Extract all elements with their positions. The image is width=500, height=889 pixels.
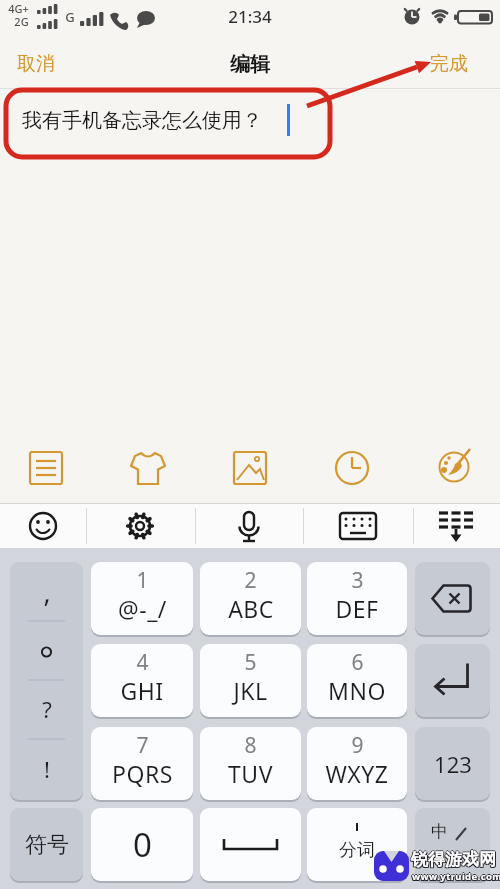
button[interactable]: 123	[415, 727, 490, 800]
button[interactable]: 1	[91, 562, 193, 635]
button[interactable]: 2	[200, 562, 301, 635]
staticText: 中	[431, 821, 448, 842]
staticText: www.ytruide.com	[412, 870, 500, 883]
staticText: TUV	[228, 758, 273, 789]
button[interactable]: 中	[415, 808, 490, 881]
staticText: www.ytruide.com	[413, 870, 500, 883]
staticText: 9	[351, 731, 364, 760]
staticText: G	[65, 8, 75, 26]
button[interactable]: 8	[200, 727, 301, 800]
button[interactable]: 分词	[307, 808, 407, 881]
staticText: !	[44, 754, 50, 784]
button[interactable]	[428, 440, 484, 496]
staticText: @-_/	[118, 593, 167, 624]
staticText: 6	[351, 648, 364, 677]
staticText: PQRS	[112, 758, 173, 789]
button[interactable]: 7	[91, 727, 193, 800]
staticText: www.ytruide.com	[411, 870, 500, 883]
staticText: 1	[136, 566, 149, 595]
button[interactable]	[324, 440, 380, 496]
button[interactable]	[415, 644, 490, 717]
staticText: www.ytruide.com	[412, 871, 500, 884]
button[interactable]: ,	[10, 562, 83, 800]
staticText: 锐得游戏网	[412, 849, 497, 870]
button[interactable]	[120, 440, 176, 496]
staticText: MNO	[328, 675, 386, 706]
staticText: ,	[43, 573, 51, 610]
staticText: DEF	[335, 593, 379, 624]
button[interactable]	[18, 440, 74, 496]
staticText: ?	[42, 694, 52, 724]
staticText: 锐得游戏网	[411, 850, 496, 871]
button[interactable]	[222, 440, 278, 496]
staticText: GHI	[120, 675, 164, 706]
staticText: www.ytruide.com	[412, 869, 500, 882]
button[interactable]: 9	[307, 727, 407, 800]
staticText: 2G	[14, 14, 29, 29]
staticText: 锐得游戏网	[410, 849, 495, 870]
button[interactable]	[18, 504, 68, 548]
button[interactable]	[200, 808, 301, 881]
button[interactable]	[115, 504, 165, 548]
button[interactable]: 取消	[10, 48, 62, 80]
staticText: 取消	[17, 52, 55, 76]
staticText: 3	[351, 566, 364, 595]
staticText: JKL	[233, 675, 268, 706]
staticText: 4	[136, 648, 149, 677]
button[interactable]: 符号	[10, 808, 83, 881]
button[interactable]: 0	[91, 808, 193, 881]
button[interactable]	[431, 504, 481, 548]
staticText: 符号	[25, 831, 69, 859]
staticText: ABC	[228, 593, 274, 624]
staticText: WXYZ	[325, 758, 389, 789]
staticText: 21:34	[228, 5, 272, 28]
button[interactable]: 4	[91, 644, 193, 717]
button[interactable]	[333, 504, 383, 548]
staticText: www.ytruide.com	[413, 871, 500, 884]
button[interactable]	[224, 504, 274, 548]
staticText: 0	[133, 822, 152, 867]
button[interactable]	[415, 562, 490, 635]
button[interactable]: 3	[307, 562, 407, 635]
staticText: 锐得游戏网	[412, 850, 497, 871]
staticText: 我有手机备忘录怎么使用？	[22, 108, 262, 133]
staticText: 锐得游戏网	[411, 849, 496, 870]
staticText: 2	[244, 566, 257, 595]
staticText: 4G+	[8, 1, 29, 16]
staticText: 完成	[430, 52, 468, 76]
staticText: www.ytruide.com	[411, 871, 500, 884]
staticText: 7	[136, 731, 149, 760]
staticText: 123	[434, 749, 472, 779]
staticText: 锐得游戏网	[410, 850, 495, 871]
staticText: 分词	[339, 839, 375, 862]
staticText: 5	[244, 648, 257, 677]
staticText: 编辑	[230, 52, 270, 77]
button[interactable]: 完成	[420, 48, 478, 80]
staticText: 锐得游戏网	[411, 848, 496, 869]
staticText: 8	[244, 731, 257, 760]
button[interactable]: 5	[200, 644, 301, 717]
button[interactable]: 6	[307, 644, 407, 717]
